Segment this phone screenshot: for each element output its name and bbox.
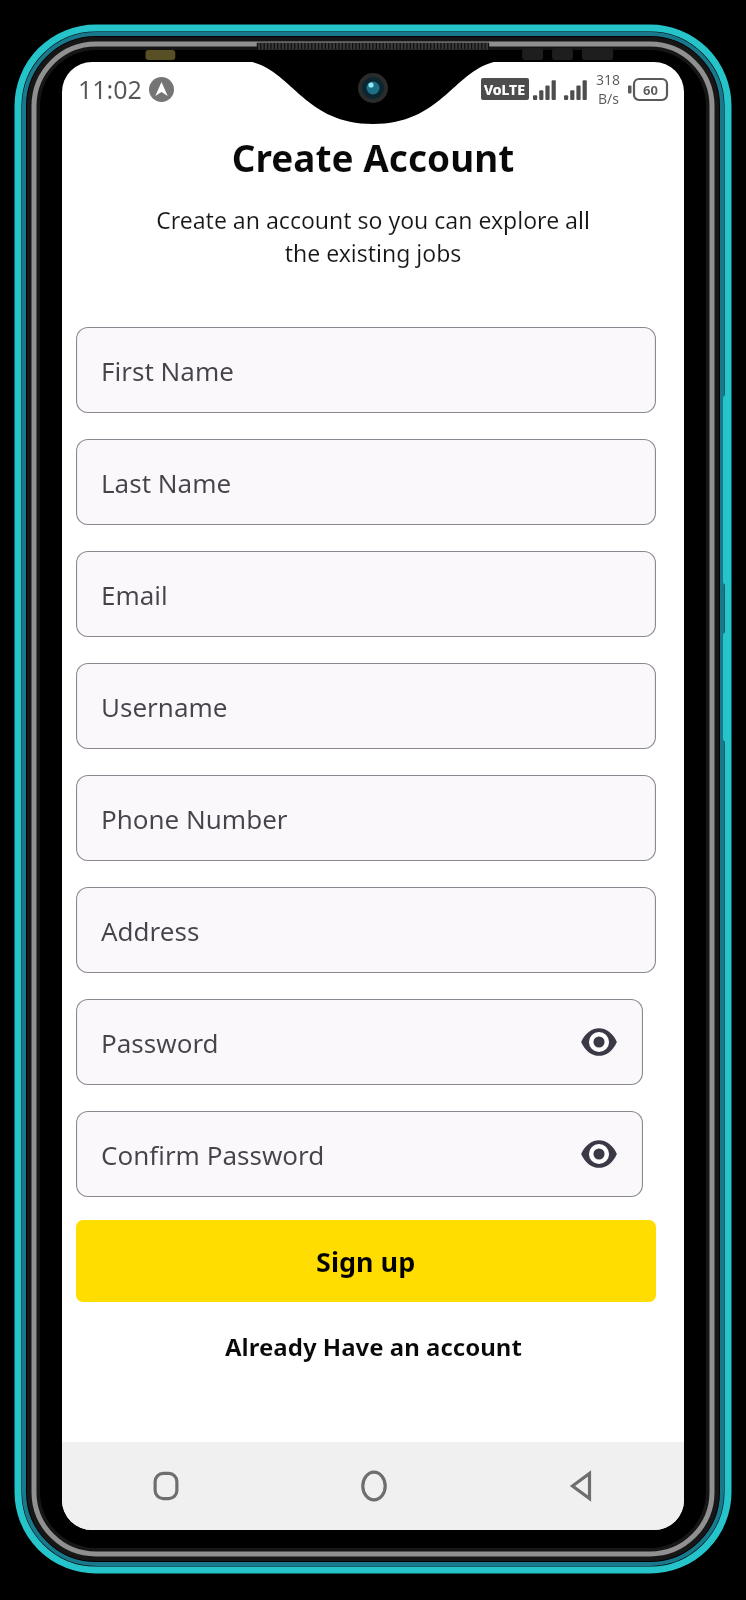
staticText: Confirm Password — [101, 1137, 325, 1172]
staticText: Sign up — [316, 1243, 416, 1280]
staticText: Username — [101, 689, 228, 724]
button[interactable]: Home — [270, 1442, 477, 1530]
staticText: Email — [101, 577, 168, 612]
button[interactable]: Back — [477, 1442, 684, 1530]
button[interactable]: Last Name — [76, 439, 656, 525]
staticText: 11:02 — [78, 72, 142, 106]
staticText: 60 — [643, 81, 658, 99]
button[interactable]: Recent apps — [62, 1442, 270, 1530]
staticText: Address — [101, 913, 200, 948]
button[interactable]: Email — [76, 551, 656, 637]
button[interactable]: Username — [76, 663, 656, 749]
staticText: Password — [101, 1025, 219, 1060]
staticText: Last Name — [101, 465, 232, 500]
staticText: Phone Number — [101, 801, 288, 836]
staticText: B/s — [598, 89, 620, 108]
staticText: Create Account — [62, 132, 684, 182]
button[interactable]: Confirm Password — [76, 1111, 643, 1197]
button[interactable]: Show password — [577, 1020, 621, 1064]
button[interactable]: Address — [76, 887, 656, 973]
staticText: 318 — [596, 70, 621, 89]
staticText: Create an account so you can explore all… — [62, 204, 684, 269]
staticText: Already Have an account — [225, 1330, 522, 1363]
staticText: VoLTE — [484, 80, 526, 99]
button[interactable]: Show password — [577, 1132, 621, 1176]
staticText: First Name — [101, 353, 234, 388]
button[interactable]: Already Have an account — [62, 1326, 684, 1367]
button[interactable]: Password — [76, 999, 643, 1085]
button[interactable]: Phone Number — [76, 775, 656, 861]
button[interactable]: Sign up — [76, 1220, 656, 1302]
button[interactable]: First Name — [76, 327, 656, 413]
